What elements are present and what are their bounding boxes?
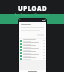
button[interactable]: File icon (19, 51, 46, 54)
button[interactable]: File icon (19, 54, 46, 57)
other: File icon (20, 43, 22, 45)
button[interactable]: File icon (19, 42, 46, 45)
other: File icon (20, 58, 22, 60)
button[interactable]: File icon (19, 57, 46, 60)
button[interactable]: File icon (19, 39, 46, 42)
other: File icon (20, 49, 22, 51)
button[interactable]: File icon (19, 45, 46, 48)
button[interactable] (19, 19, 46, 22)
other: File icon (20, 40, 22, 42)
other: File icon (20, 46, 22, 48)
other: File icon (20, 52, 22, 54)
other: File icon (20, 55, 22, 57)
staticText: UPLOAD (18, 4, 47, 12)
button[interactable]: File icon (19, 48, 46, 51)
staticText: Any Image or Document (14, 13, 50, 17)
button[interactable]: UPLOAD (0, 4, 64, 12)
